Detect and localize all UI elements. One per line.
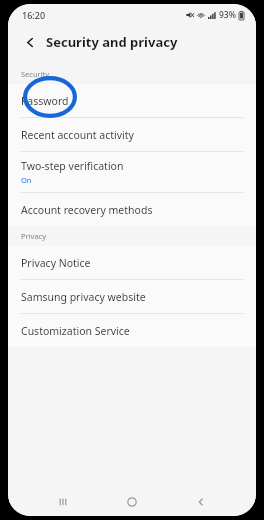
button[interactable]: Home: [118, 488, 146, 516]
button[interactable]: Customization Service: [8, 314, 256, 347]
staticText: On: [21, 175, 32, 185]
staticText: Security: [21, 69, 50, 79]
button[interactable]: Two-step verification: [8, 152, 256, 193]
button[interactable]: Account recovery methods: [8, 193, 256, 226]
staticText: 93%: [219, 9, 236, 21]
staticText: Account recovery methods: [21, 203, 153, 217]
button[interactable]: Recent account activity: [8, 118, 256, 152]
staticText: Samsung privacy website: [21, 290, 146, 304]
button[interactable]: Password: [8, 84, 256, 118]
button[interactable]: Back: [18, 30, 42, 54]
staticText: Privacy: [21, 231, 47, 241]
button[interactable]: Samsung privacy website: [8, 280, 256, 314]
button[interactable]: Recent apps: [49, 488, 77, 516]
button[interactable]: Back: [187, 488, 215, 516]
staticText: 16:20: [22, 9, 46, 21]
staticText: Recent account activity: [21, 128, 134, 142]
staticText: Password: [21, 94, 69, 108]
staticText: Customization Service: [21, 324, 130, 338]
staticText: Security and privacy: [46, 33, 178, 51]
button[interactable]: Privacy Notice: [8, 246, 256, 280]
staticText: Two-step verification: [21, 159, 124, 173]
staticText: Privacy Notice: [21, 256, 91, 270]
